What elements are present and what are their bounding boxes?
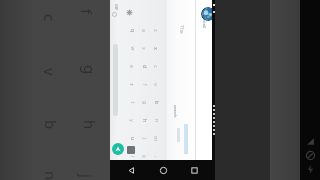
staticText: GIF bbox=[114, 4, 119, 11]
staticText: n bbox=[152, 118, 159, 122]
button[interactable]: t bbox=[127, 94, 136, 110]
staticText: q bbox=[128, 28, 135, 32]
button[interactable]: n bbox=[151, 112, 160, 128]
staticText: j bbox=[140, 137, 147, 139]
button[interactable]: e bbox=[127, 58, 136, 74]
staticText: v bbox=[40, 68, 60, 76]
staticText: t bbox=[128, 101, 135, 103]
staticText: The bbox=[178, 25, 185, 34]
staticText: m bbox=[152, 136, 159, 141]
button[interactable]: . bbox=[151, 148, 160, 164]
button[interactable]: g bbox=[139, 94, 148, 110]
button[interactable]: Profile bbox=[201, 7, 215, 21]
button[interactable]: j bbox=[139, 130, 148, 146]
staticText: f bbox=[77, 9, 97, 15]
staticText: b bbox=[41, 120, 61, 130]
staticText: h bbox=[80, 120, 100, 130]
button[interactable]: Back bbox=[121, 160, 141, 180]
button[interactable]: c bbox=[151, 58, 160, 74]
button[interactable]: k bbox=[139, 148, 148, 164]
staticText: c bbox=[40, 14, 60, 22]
staticText: j bbox=[77, 174, 97, 178]
staticText: r bbox=[128, 83, 135, 86]
staticText: b bbox=[152, 100, 159, 104]
staticText: i bbox=[128, 155, 135, 157]
button[interactable]: f bbox=[139, 76, 148, 92]
button[interactable]: a bbox=[139, 22, 148, 38]
staticText: k bbox=[140, 155, 147, 158]
button[interactable]: i bbox=[127, 148, 136, 164]
button[interactable]: Send bbox=[112, 143, 124, 155]
staticText: . bbox=[152, 155, 159, 157]
staticText: u bbox=[128, 136, 135, 140]
staticText: w bbox=[128, 46, 135, 50]
button[interactable]: m bbox=[151, 130, 160, 146]
button[interactable]: s bbox=[139, 40, 148, 56]
staticText: a bbox=[140, 29, 147, 32]
button[interactable]: x bbox=[151, 40, 160, 56]
staticText: z bbox=[152, 29, 159, 32]
staticText: y bbox=[128, 119, 135, 122]
staticText: d bbox=[140, 64, 147, 68]
button[interactable]: z bbox=[151, 22, 160, 38]
button[interactable]: Camera bbox=[127, 146, 135, 154]
staticText: v bbox=[152, 83, 159, 86]
button[interactable]: h bbox=[139, 112, 148, 128]
button[interactable]: q bbox=[127, 22, 136, 38]
staticText: n bbox=[41, 171, 61, 180]
staticText: f bbox=[140, 83, 147, 85]
staticText: x bbox=[152, 47, 159, 50]
button[interactable]: v bbox=[151, 76, 160, 92]
button[interactable]: Recents bbox=[184, 160, 204, 180]
button[interactable]: Home bbox=[153, 160, 173, 180]
staticText: search bbox=[173, 105, 178, 118]
staticText: c bbox=[152, 65, 159, 68]
staticText: g bbox=[80, 65, 100, 75]
staticText: Install bbox=[201, 16, 206, 28]
button[interactable]: y bbox=[127, 112, 136, 128]
button[interactable]: u bbox=[127, 130, 136, 146]
staticText: s bbox=[140, 47, 147, 50]
staticText: g bbox=[140, 100, 147, 104]
staticText: e bbox=[128, 65, 135, 68]
button[interactable]: b bbox=[151, 94, 160, 110]
button[interactable]: w bbox=[127, 40, 136, 56]
button[interactable]: r bbox=[127, 76, 136, 92]
staticText: h bbox=[140, 118, 147, 122]
button[interactable]: d bbox=[139, 58, 148, 74]
